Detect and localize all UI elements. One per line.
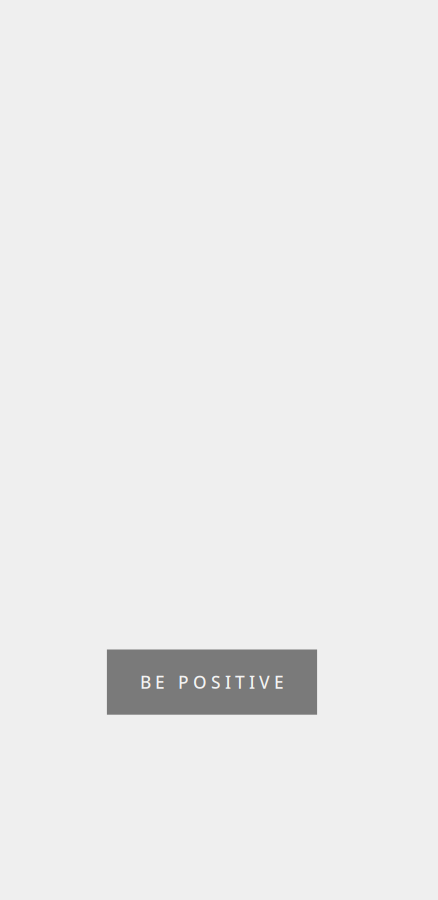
staticText: BE POSITIVE — [140, 671, 284, 694]
button[interactable]: BE POSITIVE — [107, 649, 317, 715]
